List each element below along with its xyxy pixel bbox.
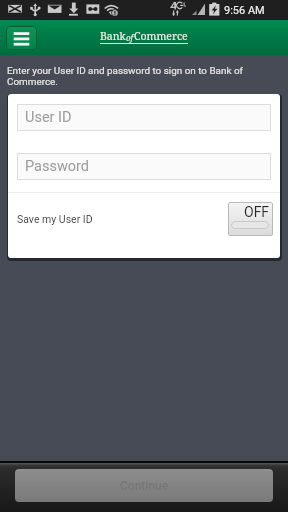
staticText: Continue [120,479,169,493]
button[interactable]: Continue [15,469,273,502]
staticText: Save my User ID [17,213,93,225]
staticText: User ID [25,109,72,126]
button[interactable]: Save my User ID, off [228,202,273,236]
staticText: 9:56 AM [224,4,265,17]
button[interactable]: User ID [17,104,271,131]
staticText: OFF [244,204,270,220]
staticText: Bank [100,29,126,43]
staticText: Password [25,158,90,175]
staticText: Enter your User ID and password to sign … [7,65,278,87]
button[interactable]: Password [17,153,271,180]
staticText: of [126,32,134,43]
staticText: Commerce [134,29,188,43]
button[interactable]: Menu [6,26,37,50]
